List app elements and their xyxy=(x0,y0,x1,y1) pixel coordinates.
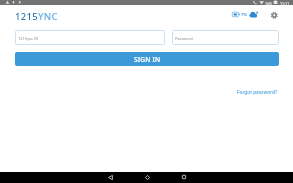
button[interactable]: Forgot password? xyxy=(234,87,280,98)
staticText: Password xyxy=(175,36,193,41)
staticText: 14% xyxy=(265,1,273,6)
staticText: 7% xyxy=(241,12,247,17)
button[interactable]: SIGN IN xyxy=(15,52,279,66)
button[interactable]: Settings xyxy=(269,10,280,21)
button[interactable]: 1215 xyxy=(15,10,58,23)
button[interactable]: Password xyxy=(172,30,279,45)
button[interactable]: Home xyxy=(138,172,156,182)
staticText: 1215ync ID xyxy=(18,36,39,41)
staticText: Forgot password? xyxy=(237,89,277,96)
button[interactable]: Recent apps xyxy=(175,172,193,182)
staticText: 11:11 xyxy=(280,1,290,6)
button[interactable]: Cloud sync xyxy=(249,10,260,20)
staticText: SIGN IN xyxy=(134,55,161,64)
button[interactable]: Device battery xyxy=(231,9,247,22)
button[interactable]: Back xyxy=(101,172,119,182)
button[interactable]: 1215ync ID xyxy=(15,30,165,45)
staticText: 1215 xyxy=(15,10,38,23)
staticText: YNC xyxy=(38,10,58,23)
